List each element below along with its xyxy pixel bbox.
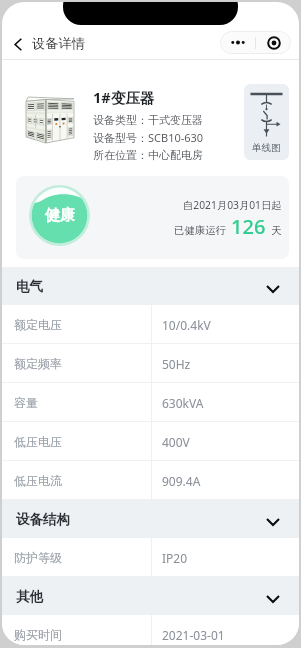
staticText: 所在位置：中心配电房 bbox=[93, 148, 203, 162]
staticText: 健康 bbox=[45, 206, 75, 225]
button[interactable]: 低压电流 bbox=[2, 461, 299, 500]
staticText: 10/0.4kV bbox=[162, 317, 211, 333]
button[interactable]: Close mini program bbox=[256, 31, 291, 54]
staticText: 额定电压 bbox=[14, 317, 62, 332]
button[interactable]: 低压电压 bbox=[2, 422, 299, 461]
button[interactable]: 额定电压 bbox=[2, 305, 299, 344]
staticText: 容量 bbox=[14, 395, 38, 410]
staticText: 1#变压器 bbox=[93, 87, 155, 107]
staticText: 设备型号：SCB10-630 bbox=[93, 130, 204, 145]
button[interactable]: 其他 bbox=[2, 577, 299, 615]
button[interactable]: 单线图 bbox=[244, 84, 289, 160]
staticText: 电气 bbox=[16, 278, 43, 295]
staticText: 50Hz bbox=[162, 356, 191, 372]
staticText: 低压电流 bbox=[14, 473, 62, 488]
button[interactable]: 容量 bbox=[2, 383, 299, 422]
staticText: 909.4A bbox=[162, 473, 201, 489]
staticText: 设备类型：干式变压器 bbox=[93, 113, 203, 127]
button[interactable]: More options bbox=[220, 31, 255, 54]
staticText: 设备结构 bbox=[16, 511, 70, 528]
button[interactable]: 设备结构 bbox=[2, 500, 299, 538]
staticText: 630kVA bbox=[162, 395, 204, 411]
staticText: 400V bbox=[162, 434, 190, 450]
staticText: 2021-03-01 bbox=[162, 627, 225, 643]
staticText: 购买时间 bbox=[14, 627, 62, 642]
staticText: 额定频率 bbox=[14, 356, 62, 371]
staticText: 126 bbox=[231, 213, 266, 240]
button[interactable]: 健康 bbox=[16, 176, 289, 259]
staticText: 单线图 bbox=[252, 142, 281, 154]
staticText: 自2021月03月01日起 bbox=[183, 198, 282, 212]
staticText: 已健康运行 bbox=[174, 224, 226, 237]
button[interactable]: 防护等级 bbox=[2, 538, 299, 577]
staticText: 天 bbox=[271, 224, 282, 237]
staticText: 低压电压 bbox=[14, 434, 62, 449]
button[interactable]: 购买时间 bbox=[2, 615, 299, 645]
staticText: IP20 bbox=[162, 550, 188, 566]
button[interactable]: 额定频率 bbox=[2, 344, 299, 383]
button[interactable]: Back bbox=[6, 31, 32, 57]
button[interactable]: 电气 bbox=[2, 267, 299, 305]
staticText: 设备详情 bbox=[32, 35, 85, 52]
staticText: 其他 bbox=[16, 588, 43, 605]
staticText: 防护等级 bbox=[14, 550, 62, 565]
